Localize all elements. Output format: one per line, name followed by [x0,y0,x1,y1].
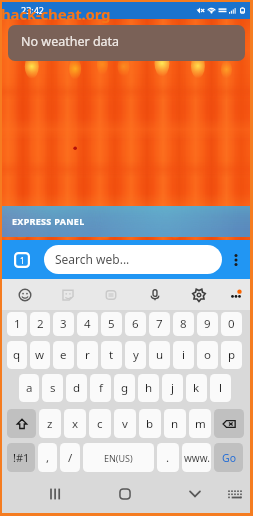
staticText: t [109,347,114,363]
button[interactable]: p [221,341,242,369]
staticText: 1 [14,316,21,332]
button[interactable]: !#1 [7,443,35,472]
button[interactable]: w [30,341,50,369]
button[interactable]: , [38,443,57,472]
button[interactable]: 1 [7,312,27,336]
button[interactable]: Backspace [214,409,244,438]
staticText: www. [184,451,210,465]
button[interactable]: Go [214,443,243,472]
button[interactable]: g [114,374,135,402]
button[interactable]: 4 [77,312,98,336]
button[interactable]: Home [106,474,144,513]
staticText: , [46,450,50,466]
staticText: EXPRESS PANEL [12,215,85,227]
button[interactable]: s [42,374,63,402]
button[interactable]: l [210,374,231,402]
button[interactable]: x [64,409,86,438]
button[interactable]: m [189,409,211,438]
staticText: 4 [84,316,91,332]
staticText: 7 [156,316,163,332]
button[interactable]: GIF [93,279,129,310]
button[interactable]: n [164,409,186,438]
staticText: d [73,380,81,396]
staticText: hack-cheat.org [1,4,111,24]
button[interactable]: / [60,443,80,472]
button[interactable]: f [90,374,111,402]
staticText: 0 [228,316,235,332]
button[interactable]: 0 [221,312,242,336]
button[interactable]: z [39,409,61,438]
button[interactable]: . [157,443,179,472]
button[interactable]: k [186,374,207,402]
button[interactable]: d [66,374,87,402]
button[interactable]: Search web... [44,245,222,274]
button[interactable]: No weather data [8,25,245,61]
button[interactable]: q [7,341,27,369]
staticText: c [97,416,103,432]
staticText: k [193,380,200,396]
button[interactable]: j [162,374,183,402]
staticText: x [72,416,79,432]
staticText: g [121,380,129,396]
button[interactable]: 5 [101,312,122,336]
button[interactable]: 8 [173,312,194,336]
button[interactable]: o [197,341,218,369]
button[interactable]: v [114,409,136,438]
button[interactable]: Emoji [7,279,43,310]
staticText: 6 [132,316,139,332]
button[interactable]: c [89,409,111,438]
button[interactable]: More [218,279,253,310]
button[interactable]: r [77,341,98,369]
button[interactable]: u [149,341,170,369]
button[interactable]: EN(US) [83,443,154,472]
staticText: 23:42 [21,4,45,16]
staticText: l [219,380,222,396]
staticText: 8 [180,316,187,332]
button[interactable]: i [173,341,194,369]
button[interactable]: EXPRESS PANEL [2,206,250,237]
staticText: 1 [20,255,25,266]
button[interactable]: www. [182,443,211,472]
staticText: m [195,416,206,432]
button[interactable]: t [101,341,122,369]
button[interactable]: Hide keyboard [216,474,253,513]
button[interactable]: 2 [30,312,50,336]
staticText: 2 [37,316,44,332]
button[interactable]: Shift [7,409,36,438]
staticText: p [228,347,236,363]
button[interactable]: More options [222,240,250,279]
button[interactable]: Stickers [50,279,86,310]
button[interactable]: Voice input [137,279,173,310]
button[interactable]: 9 [197,312,218,336]
staticText: j [171,380,174,396]
button[interactable]: b [139,409,161,438]
button[interactable]: y [125,341,146,369]
staticText: e [60,347,67,363]
button[interactable]: 6 [125,312,146,336]
button[interactable]: a [19,374,39,402]
button[interactable]: e [53,341,74,369]
staticText: !#1 [13,450,30,465]
button[interactable]: Back [176,474,214,513]
button[interactable]: h [138,374,159,402]
staticText: Go [222,451,236,465]
button[interactable]: 7 [149,312,170,336]
button[interactable]: Tabs: 1 [14,252,30,268]
staticText: b [146,416,154,432]
staticText: u [156,347,164,363]
staticText: n [171,416,179,432]
button[interactable]: Recent apps [37,474,75,513]
staticText: w [35,347,45,363]
staticText: 9 [204,316,211,332]
staticText: h [145,380,153,396]
staticText: s [50,380,56,396]
button[interactable]: 3 [53,312,74,336]
staticText: a [26,380,33,396]
staticText: f [99,380,103,396]
button[interactable]: Settings [181,279,217,310]
staticText: Search web... [55,251,130,267]
staticText: / [68,450,73,466]
staticText: z [47,416,53,432]
staticText: v [122,416,128,432]
staticText: i [182,347,185,363]
